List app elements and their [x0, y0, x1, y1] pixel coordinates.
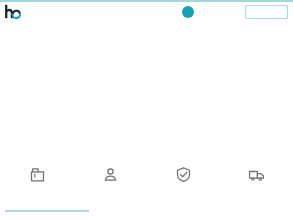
button[interactable]: Home logo [4, 3, 26, 22]
button[interactable]: Account [74, 152, 147, 196]
button[interactable]: Action button [245, 5, 288, 19]
button[interactable]: Shop [0, 152, 74, 196]
button[interactable]: Delivery [220, 152, 293, 196]
button[interactable]: Protection [147, 152, 220, 196]
button[interactable]: Status indicator [182, 6, 194, 18]
